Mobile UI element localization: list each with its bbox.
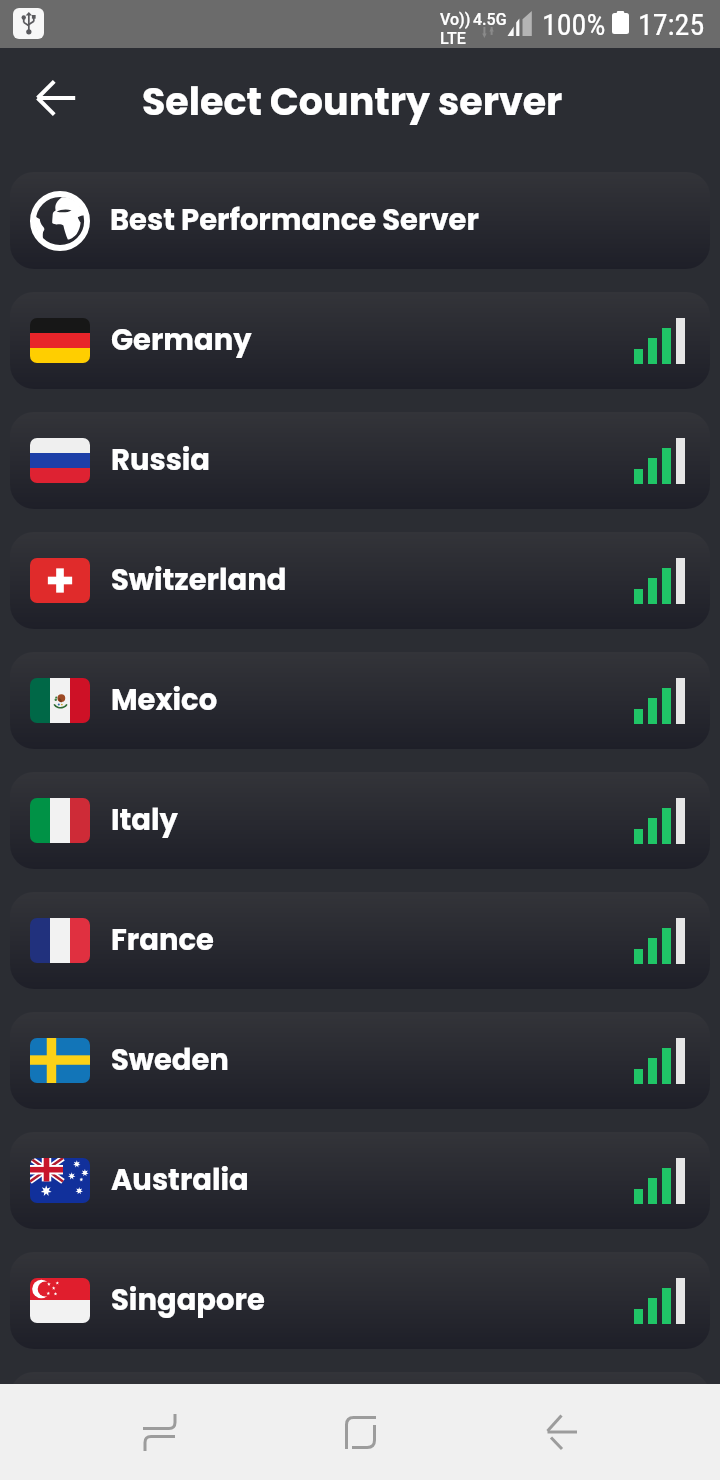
staticText: Australia [111, 1160, 249, 1201]
button[interactable]: Back [514, 1384, 610, 1480]
button[interactable]: Singapore [10, 1252, 710, 1349]
button[interactable]: Australia [10, 1132, 710, 1229]
staticText: France [111, 920, 214, 961]
staticText: Russia [111, 440, 211, 481]
button[interactable]: France [10, 892, 710, 989]
staticText: Switzerland [111, 560, 287, 601]
staticText: 100% [542, 7, 606, 42]
staticText: Germany [111, 320, 252, 361]
staticText: Netherlands [111, 1400, 296, 1441]
button[interactable]: Mexico [10, 652, 710, 749]
button[interactable]: Recent apps [111, 1384, 207, 1480]
staticText: Singapore [111, 1280, 265, 1321]
staticText: Vo)) [440, 10, 471, 29]
button[interactable]: Home [312, 1384, 408, 1480]
staticText: Sweden [111, 1040, 229, 1081]
button[interactable]: Best Performance Server [10, 172, 710, 269]
staticText: Mexico [111, 680, 218, 721]
button[interactable]: Switzerland [10, 532, 710, 629]
staticText: Best Performance Server [110, 200, 479, 241]
button[interactable]: Russia [10, 412, 710, 509]
staticText: 4.5G [473, 10, 507, 29]
button[interactable]: Germany [10, 292, 710, 389]
button[interactable]: Sweden [10, 1012, 710, 1109]
staticText: LTE [440, 29, 466, 48]
button[interactable]: Back [22, 64, 90, 132]
staticText: Select Country server [142, 75, 563, 128]
button[interactable]: Netherlands [10, 1372, 710, 1469]
button[interactable]: Italy [10, 772, 710, 869]
staticText: 17:25 [638, 7, 705, 42]
staticText: Italy [111, 800, 178, 841]
